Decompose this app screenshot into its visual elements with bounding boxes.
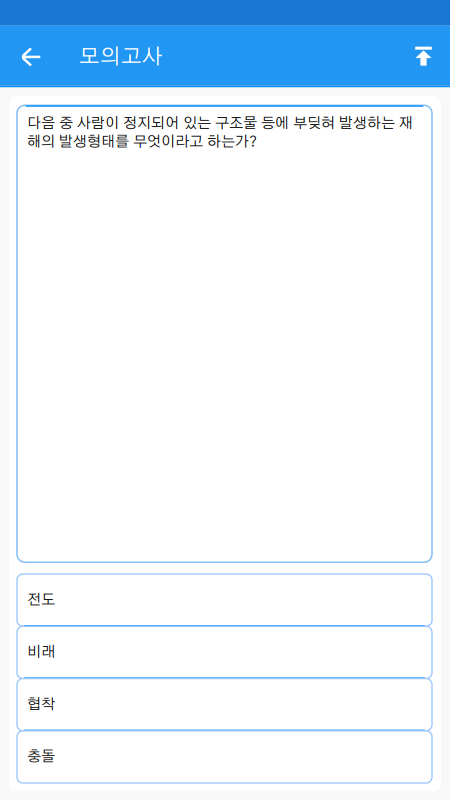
button[interactable]: 협착 [17, 678, 432, 731]
button[interactable]: 충돌 [17, 731, 432, 783]
button[interactable]: Back [11, 26, 51, 86]
button[interactable]: Submit [402, 26, 445, 86]
staticText: 전도 [27, 593, 55, 607]
staticText: 모의고사 [79, 47, 163, 68]
staticText: 비래 [27, 645, 55, 660]
staticText: 충돌 [27, 750, 55, 764]
button[interactable]: 비래 [17, 626, 432, 678]
staticText: 다음 중 사람이 정지되어 있는 구조물 등에 부딪혀 발생하는 재해의 발생형… [27, 116, 413, 149]
button[interactable]: 전도 [17, 574, 432, 626]
staticText: 협착 [27, 697, 55, 712]
